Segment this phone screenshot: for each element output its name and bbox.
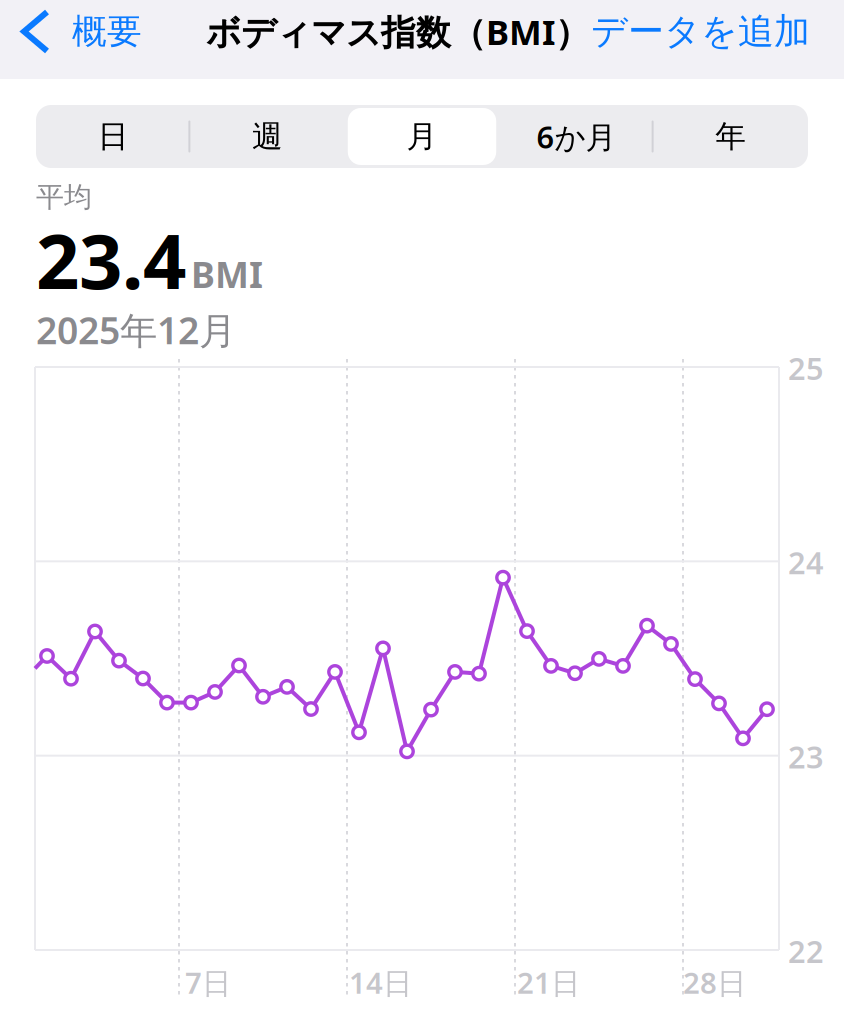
button[interactable]: 年 [654,105,808,168]
staticText: 日 [98,118,129,155]
staticText: ボディマス指数（BMI） [206,8,590,54]
button[interactable]: 戻る 概要 [0,10,142,53]
staticText: 6か月 [536,116,616,157]
button[interactable]: データを追加 [591,9,844,54]
staticText: 25 [788,348,824,388]
staticText: 22 [788,931,824,971]
staticText: 週 [252,118,283,155]
staticText: 年 [715,118,746,155]
staticText: 14日 [349,963,412,1002]
staticText: 21日 [517,963,580,1002]
staticText: 28日 [683,963,746,1002]
staticText: 23.4 [36,209,186,310]
staticText: データを追加 [591,9,810,54]
staticText: 概要 [72,10,142,53]
staticText: 7日 [185,963,231,1002]
button[interactable]: 月 [345,105,499,168]
staticText: 平均 [36,180,92,214]
staticText: 24 [788,542,824,583]
staticText: 23 [788,736,824,777]
staticText: 2025年12月 [36,305,236,355]
button[interactable]: 週 [190,105,345,168]
button[interactable]: 6か月 [499,105,654,168]
button[interactable]: 日 [36,105,190,168]
staticText: 月 [406,118,437,155]
staticText: BMI [191,250,263,298]
